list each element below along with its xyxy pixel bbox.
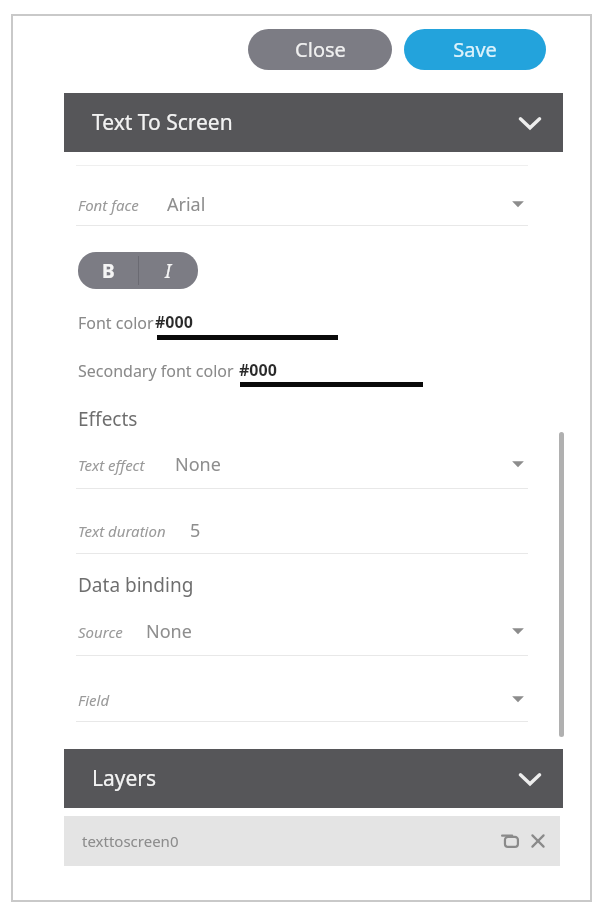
staticText: Data binding bbox=[78, 572, 194, 598]
staticText: Arial bbox=[167, 192, 206, 217]
staticText: 5 bbox=[190, 518, 201, 543]
staticText: None bbox=[175, 452, 221, 477]
staticText: Secondary font color bbox=[78, 360, 234, 382]
staticText: #000 bbox=[239, 359, 277, 381]
button[interactable]: Duplicate layer bbox=[495, 826, 525, 856]
button[interactable]: Text To Screen bbox=[64, 93, 563, 152]
button[interactable]: I bbox=[138, 252, 198, 289]
staticText: Effects bbox=[78, 406, 138, 432]
staticText: Text effect bbox=[78, 455, 145, 475]
staticText: Text duration bbox=[78, 521, 166, 541]
staticText: None bbox=[146, 619, 192, 644]
button[interactable]: texttoscreen0 bbox=[64, 816, 560, 866]
button[interactable]: Layers bbox=[64, 749, 563, 808]
button[interactable]: Delete layer bbox=[523, 826, 553, 856]
staticText: Field bbox=[78, 690, 110, 710]
staticText: Source bbox=[78, 622, 123, 642]
staticText: Font color bbox=[78, 312, 154, 334]
button[interactable]: Close bbox=[248, 29, 392, 70]
staticText: Save bbox=[453, 36, 497, 63]
staticText: Close bbox=[295, 36, 346, 63]
staticText: Layers bbox=[92, 764, 157, 793]
staticText: texttoscreen0 bbox=[82, 831, 179, 851]
staticText: #000 bbox=[155, 311, 193, 333]
staticText: I bbox=[165, 258, 172, 284]
button[interactable]: Save bbox=[404, 29, 546, 70]
button[interactable]: B bbox=[78, 252, 138, 289]
staticText: Font face bbox=[78, 195, 139, 215]
staticText: Text To Screen bbox=[92, 108, 233, 137]
staticText: B bbox=[102, 258, 115, 284]
